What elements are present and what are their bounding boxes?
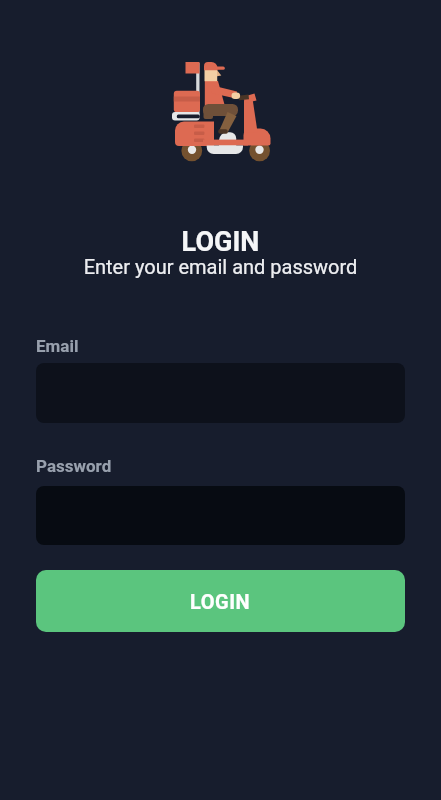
staticText: Email xyxy=(36,336,79,356)
staticText: Enter your email and password xyxy=(0,255,441,278)
staticText: LOGIN xyxy=(0,226,441,258)
button[interactable]: LOGIN xyxy=(36,570,405,632)
staticText: Password xyxy=(36,456,112,476)
staticText: LOGIN xyxy=(190,590,251,613)
